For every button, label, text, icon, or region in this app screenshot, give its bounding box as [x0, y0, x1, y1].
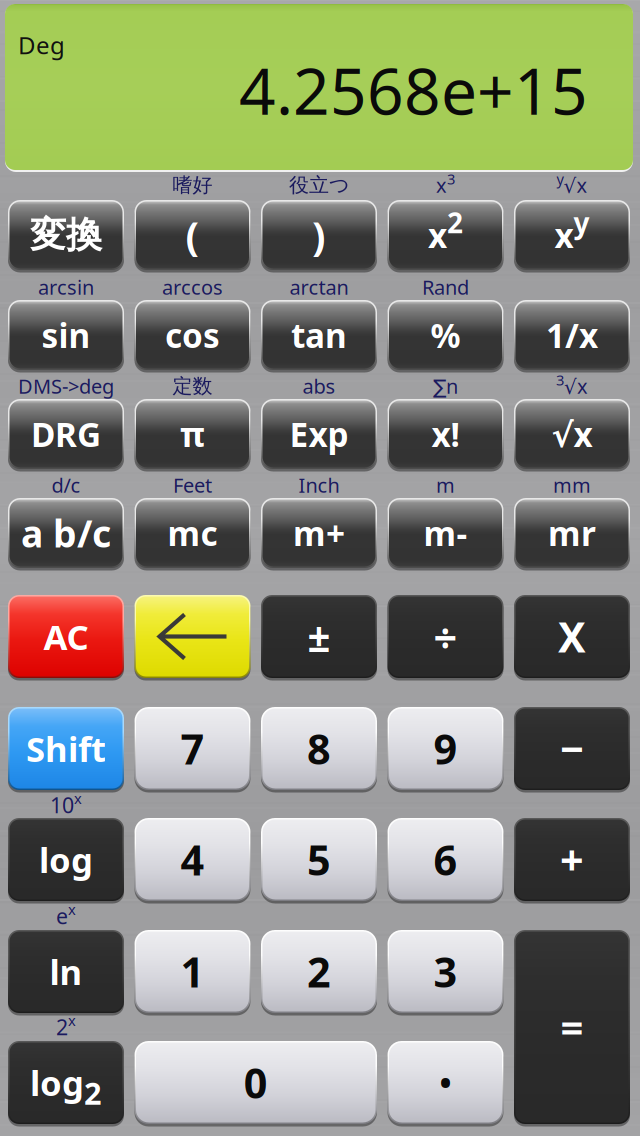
- staticText: √x: [551, 412, 592, 456]
- button[interactable]: (: [134, 200, 250, 270]
- staticText: x: [428, 213, 447, 257]
- button[interactable]: a b/c: [8, 498, 124, 568]
- staticText: mr: [548, 511, 596, 555]
- staticText: Exp: [289, 412, 348, 456]
- staticText: +: [560, 832, 584, 887]
- button[interactable]: %: [387, 300, 503, 370]
- button[interactable]: 2: [261, 930, 377, 1013]
- staticText: 0: [244, 1055, 268, 1110]
- staticText: 6: [433, 832, 457, 887]
- button[interactable]: m-: [387, 498, 503, 568]
- staticText: 役立つ: [289, 173, 349, 197]
- button[interactable]: 6: [387, 818, 503, 901]
- staticText: mc: [167, 511, 217, 555]
- staticText: x: [554, 213, 573, 257]
- button[interactable]: 8: [261, 707, 377, 790]
- button[interactable]: Shift: [8, 707, 124, 790]
- button[interactable]: 4: [134, 818, 250, 901]
- staticText: 2: [447, 204, 463, 241]
- button[interactable]: tan: [261, 300, 377, 370]
- button[interactable]: DRG: [8, 399, 124, 469]
- button[interactable]: 1/x: [514, 300, 630, 370]
- button[interactable]: Backspace: [134, 595, 250, 678]
- button[interactable]: log: [8, 1041, 124, 1124]
- staticText: 4.2568e+15: [239, 47, 588, 132]
- button[interactable]: −: [514, 707, 630, 790]
- button[interactable]: AC: [8, 595, 124, 678]
- staticText: •: [439, 1061, 451, 1104]
- staticText: ∑n: [433, 373, 458, 399]
- staticText: AC: [43, 613, 88, 659]
- staticText: Rand: [422, 274, 469, 300]
- button[interactable]: √x: [514, 399, 630, 469]
- staticText: arcsin: [38, 274, 94, 300]
- button[interactable]: 1: [134, 930, 250, 1013]
- staticText: e: [56, 902, 68, 930]
- staticText: √x: [563, 172, 587, 198]
- staticText: d/c: [51, 472, 80, 498]
- staticText: 8: [307, 721, 331, 776]
- staticText: −: [560, 721, 584, 776]
- button[interactable]: Exp: [261, 399, 377, 469]
- staticText: 1/x: [546, 313, 598, 357]
- button[interactable]: 変換: [8, 200, 124, 270]
- button[interactable]: ±: [261, 595, 377, 678]
- staticText: 4: [180, 832, 204, 887]
- button[interactable]: m+: [261, 498, 377, 568]
- button[interactable]: 3: [387, 930, 503, 1013]
- button[interactable]: x: [514, 200, 630, 270]
- button[interactable]: π: [134, 399, 250, 469]
- staticText: Feet: [173, 472, 212, 498]
- staticText: 7: [180, 721, 204, 776]
- staticText: arctan: [289, 274, 348, 300]
- staticText: sin: [41, 313, 90, 357]
- button[interactable]: decimal point: [387, 1041, 503, 1124]
- button[interactable]: 5: [261, 818, 377, 901]
- button[interactable]: X: [514, 595, 630, 678]
- staticText: 変換: [30, 213, 102, 257]
- staticText: x: [68, 1010, 76, 1030]
- button[interactable]: 7: [134, 707, 250, 790]
- button[interactable]: mr: [514, 498, 630, 568]
- staticText: log: [30, 1059, 84, 1105]
- staticText: m: [436, 472, 455, 498]
- button[interactable]: 9: [387, 707, 503, 790]
- staticText: y: [556, 169, 563, 188]
- staticText: arccos: [162, 274, 223, 300]
- staticText: Deg: [18, 29, 65, 61]
- staticText: x: [68, 899, 76, 919]
- staticText: cos: [165, 313, 220, 357]
- staticText: m-: [423, 511, 467, 555]
- button[interactable]: sin: [8, 300, 124, 370]
- button[interactable]: x!: [387, 399, 503, 469]
- staticText: %: [430, 313, 460, 357]
- staticText: x: [74, 788, 82, 808]
- staticText: ÷: [433, 609, 457, 664]
- button[interactable]: x: [387, 200, 503, 270]
- staticText: Inch: [298, 472, 339, 498]
- button[interactable]: cos: [134, 300, 250, 370]
- button[interactable]: ÷: [387, 595, 503, 678]
- staticText: 1: [180, 944, 204, 999]
- button[interactable]: log: [8, 818, 124, 901]
- staticText: 定数: [172, 374, 212, 398]
- staticText: log: [39, 836, 93, 882]
- button[interactable]: ln: [8, 930, 124, 1013]
- staticText: 嗜好: [172, 173, 212, 197]
- staticText: ): [312, 208, 326, 261]
- button[interactable]: ): [261, 200, 377, 270]
- staticText: y: [573, 204, 589, 241]
- button[interactable]: mc: [134, 498, 250, 568]
- staticText: abs: [302, 373, 335, 399]
- staticText: π: [180, 412, 205, 456]
- button[interactable]: =: [514, 930, 630, 1124]
- staticText: x!: [431, 412, 459, 456]
- staticText: m+: [293, 511, 345, 555]
- staticText: 3: [556, 370, 564, 389]
- button[interactable]: +: [514, 818, 630, 901]
- staticText: Shift: [26, 725, 106, 771]
- staticText: 2: [84, 1072, 102, 1113]
- staticText: 2: [56, 1013, 68, 1041]
- staticText: tan: [291, 313, 347, 357]
- button[interactable]: 0: [134, 1041, 377, 1124]
